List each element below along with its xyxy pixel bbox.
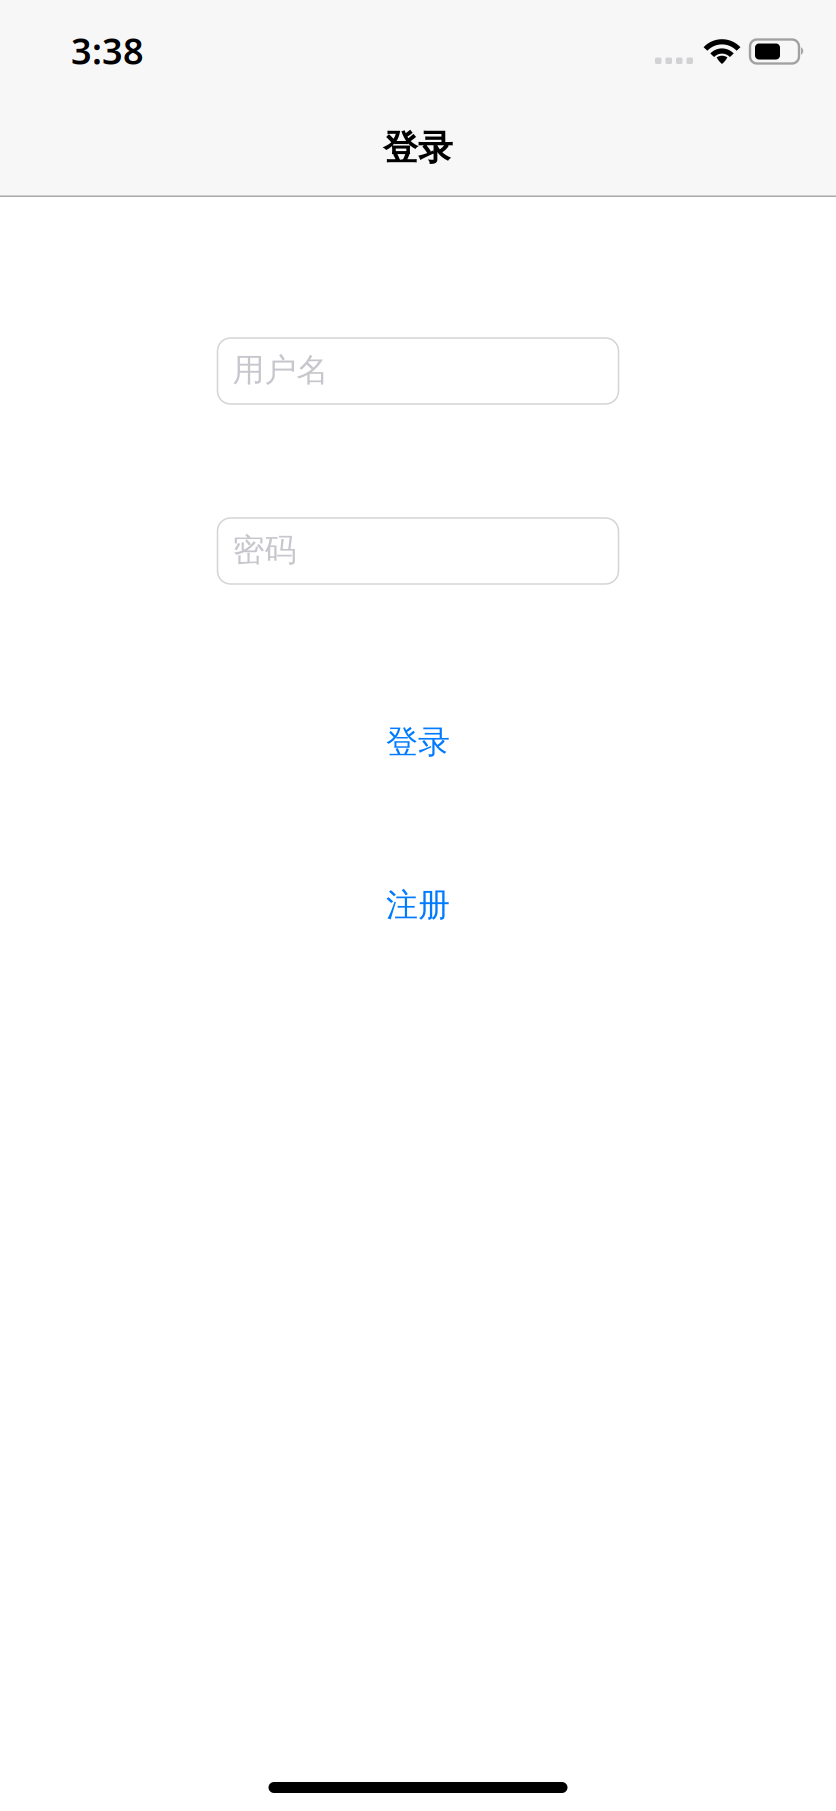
button[interactable]: 用户名 [217,338,618,404]
button[interactable]: 注册 [217,881,618,929]
staticText: 注册 [386,885,450,925]
button[interactable]: 登录 [217,718,618,766]
staticText: 3:38 [71,27,144,74]
staticText: 密码 [232,530,296,570]
staticText: 用户名 [232,350,328,390]
staticText: 登录 [386,722,450,762]
staticText: 登录 [383,127,453,169]
button[interactable]: 密码 [217,518,618,584]
